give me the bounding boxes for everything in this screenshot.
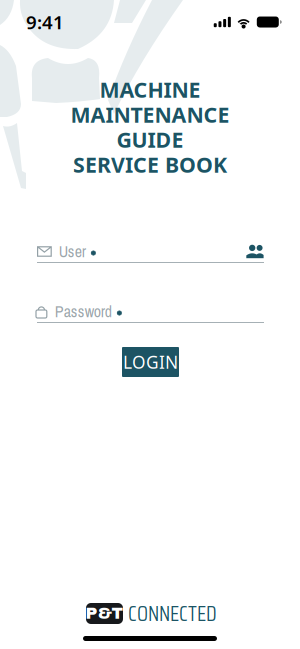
button[interactable]: LOGIN (122, 347, 179, 377)
staticText: User (59, 241, 86, 262)
staticText: Password (55, 301, 112, 322)
staticText: MAINTENANCE (70, 100, 229, 129)
staticText: LOGIN (123, 350, 178, 373)
staticText: MACHINE (99, 75, 200, 104)
staticText: CONNECTED (128, 597, 217, 630)
staticText: P&T (85, 605, 123, 622)
staticText: SERVICE BOOK (73, 150, 227, 179)
staticText: GUIDE (116, 125, 183, 154)
button[interactable]: Choose user (246, 244, 264, 259)
staticText: 9:41 (26, 10, 64, 34)
